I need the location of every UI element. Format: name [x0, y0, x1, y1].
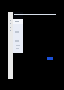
button[interactable]: Navigation rail — [8, 12, 13, 79]
button[interactable]: Top app bar — [13, 12, 23, 19]
